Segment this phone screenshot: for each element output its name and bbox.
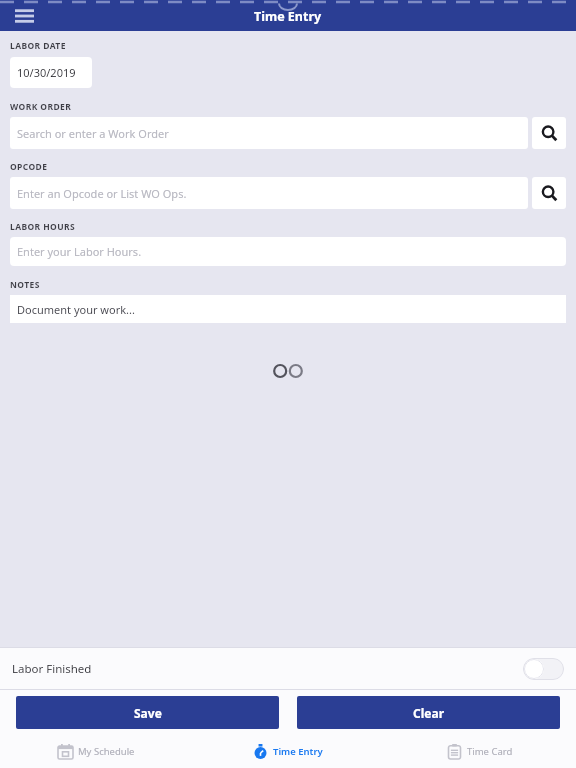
button[interactable]: Search opcode	[532, 177, 566, 209]
button[interactable]: Labor Finished toggle, off	[523, 658, 564, 680]
button[interactable]: Enter an Opcode or List WO Ops.	[10, 177, 528, 209]
button[interactable]: Save	[16, 696, 279, 729]
staticText: Time Card	[467, 745, 513, 758]
button[interactable]: My Schedule	[0, 735, 192, 768]
button[interactable]: Enter your Labor Hours.	[10, 237, 566, 266]
button[interactable]: Time Entry	[192, 735, 384, 768]
staticText: Labor Finished	[12, 661, 92, 677]
button[interactable]: Document your work...	[10, 295, 566, 323]
staticText: NOTES	[10, 279, 40, 291]
staticText: Search or enter a Work Order	[17, 126, 169, 141]
staticText: Time Entry	[254, 8, 322, 25]
staticText: OPCODE	[10, 161, 48, 173]
staticText: Clear	[413, 705, 444, 721]
button[interactable]: Search work order	[532, 117, 566, 149]
staticText: Enter an Opcode or List WO Ops.	[17, 186, 187, 201]
staticText: Time Entry	[273, 745, 323, 758]
staticText: My Schedule	[78, 745, 135, 758]
button[interactable]: Open navigation menu	[8, 0, 40, 31]
staticText: Document your work...	[17, 302, 135, 317]
staticText: Enter your Labor Hours.	[17, 244, 142, 259]
button[interactable]: Labor Finished	[0, 648, 576, 689]
staticText: LABOR DATE	[10, 40, 66, 52]
button[interactable]: Clear	[297, 696, 560, 729]
staticText: LABOR HOURS	[10, 221, 76, 233]
button[interactable]: Search or enter a Work Order	[10, 117, 528, 149]
staticText: WORK ORDER	[10, 101, 72, 113]
button[interactable]: 10/30/2019	[10, 57, 92, 88]
staticText: 10/30/2019	[17, 65, 76, 80]
staticText: Save	[134, 705, 162, 721]
button[interactable]: Time Card	[384, 735, 576, 768]
